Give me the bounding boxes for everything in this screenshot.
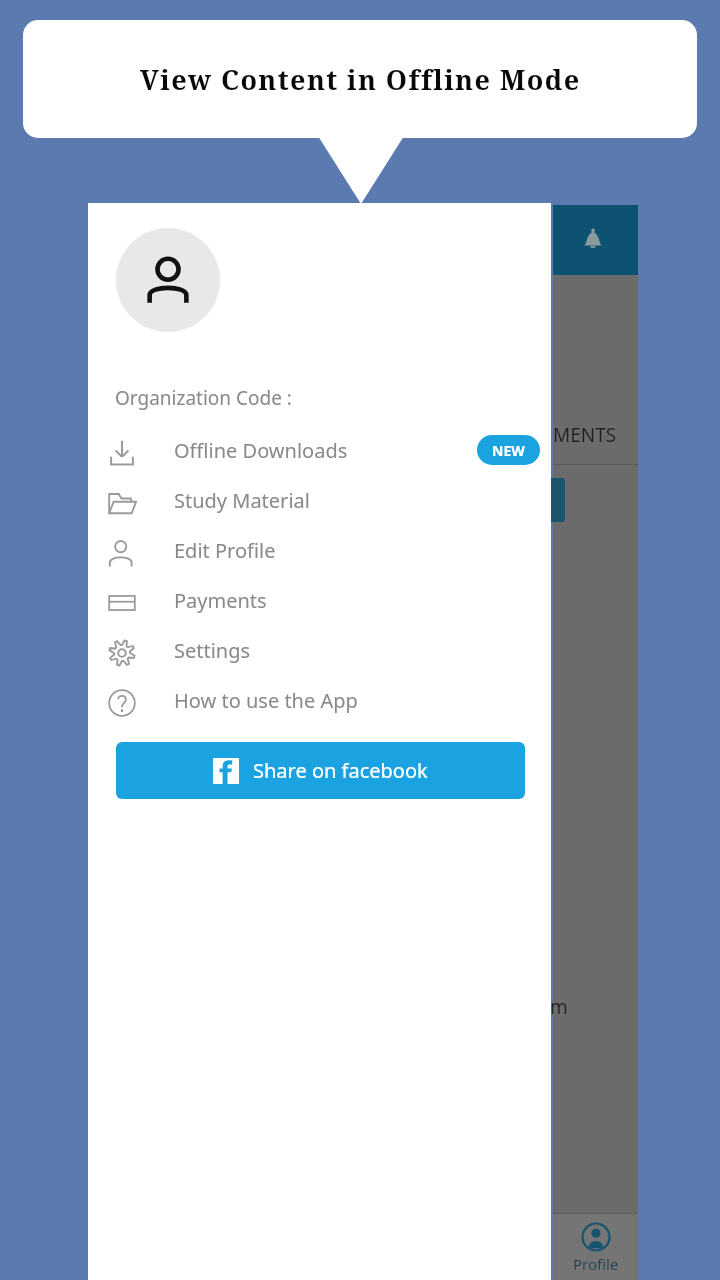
staticText: Share on facebook bbox=[253, 757, 428, 784]
button[interactable]: Study Material bbox=[88, 475, 551, 525]
button[interactable]: Edit Profile bbox=[88, 525, 551, 575]
button[interactable]: How to use the App bbox=[88, 675, 551, 725]
button[interactable]: Profile photo bbox=[116, 228, 220, 332]
button[interactable]: NEW bbox=[477, 435, 540, 465]
staticText: Profile bbox=[573, 1254, 619, 1274]
staticText: Study Material bbox=[174, 487, 310, 514]
button[interactable]: Payments bbox=[88, 575, 551, 625]
staticText: Offline Downloads bbox=[174, 437, 348, 464]
button[interactable] bbox=[550, 478, 565, 522]
button[interactable]: Share on facebook bbox=[116, 742, 525, 799]
staticText: MENTS bbox=[553, 422, 617, 448]
button[interactable]: Settings bbox=[88, 625, 551, 675]
staticText: How to use the App bbox=[174, 687, 358, 714]
staticText: Settings bbox=[174, 637, 251, 664]
button[interactable]: Notifications bbox=[553, 205, 638, 275]
button[interactable]: Organization Code : bbox=[115, 381, 578, 415]
button[interactable]: View Content in Offline Mode bbox=[23, 20, 697, 138]
staticText: Edit Profile bbox=[174, 537, 276, 564]
button[interactable]: Offline Downloads bbox=[88, 425, 551, 475]
button[interactable]: MENTS bbox=[548, 420, 638, 450]
staticText: Organization Code : bbox=[115, 385, 292, 411]
staticText: View Content in Offline Mode bbox=[140, 61, 581, 98]
staticText: m bbox=[550, 994, 568, 1020]
button[interactable]: Profile bbox=[553, 1218, 638, 1280]
staticText: Payments bbox=[174, 587, 267, 614]
staticText: NEW bbox=[492, 441, 525, 460]
